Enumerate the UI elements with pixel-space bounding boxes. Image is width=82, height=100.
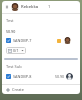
other: Create (6, 88, 10, 92)
other: Profile picture (64, 37, 71, 44)
other: Task (6, 38, 11, 43)
staticText: Create (12, 87, 24, 92)
other: Profile picture (66, 73, 73, 80)
staticText: Test Sub (6, 64, 22, 69)
staticText: 50.90 (55, 74, 64, 79)
staticText: SANDBP-8 (13, 74, 32, 79)
staticText: Test (6, 18, 14, 23)
button[interactable]: Task (2, 36, 80, 45)
staticText: 50.90 (6, 29, 16, 34)
other: Menu (5, 5, 9, 9)
button[interactable]: Create (2, 85, 80, 94)
staticText: 1 (48, 4, 51, 10)
other: Profile picture (11, 3, 19, 11)
staticText: 0/1 (13, 48, 19, 53)
button[interactable]: Task (2, 72, 80, 81)
button[interactable]: Status (57, 39, 61, 43)
button[interactable]: Menu (2, 1, 80, 13)
staticText: Rebekka Hellmann (21, 4, 46, 10)
button[interactable]: 0/1 (6, 47, 26, 54)
other: Task (6, 74, 11, 79)
staticText: SANDBP-7 (13, 38, 32, 43)
